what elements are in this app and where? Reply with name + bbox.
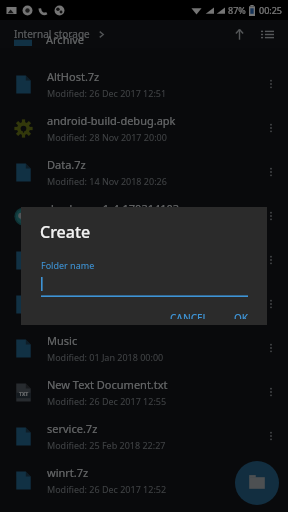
staticText: Download (47, 289, 100, 304)
button[interactable]: More options (258, 291, 284, 317)
staticText: Data.7z (47, 157, 86, 172)
staticText: android-build-debug.apk (47, 113, 176, 128)
staticText: Modified: 26 Dec 2017 12:51 (47, 87, 167, 99)
button[interactable]: daydream-1-4-170314103-apkplz.com.apk (0, 194, 288, 238)
staticText: Modified: 26 Dec 2017 12:52 (47, 483, 167, 495)
button[interactable]: More options (258, 247, 284, 273)
staticText: Modified: 01 Jan 2018 00:00 (47, 351, 164, 363)
button[interactable]: TXT (0, 370, 288, 414)
button[interactable]: service.7z (0, 414, 288, 458)
staticText: AltHost.7z (47, 69, 100, 84)
button[interactable]: More options (258, 203, 284, 229)
button[interactable]: OK (226, 305, 257, 325)
button[interactable]: Music (0, 326, 288, 370)
button[interactable]: Internal storage (14, 27, 106, 41)
button[interactable]: More options (258, 335, 284, 361)
staticText: Modified: 25 Feb 2018 22:27 (47, 439, 166, 451)
staticText: service.7z (47, 421, 98, 436)
staticText: Modified: 01 Jan 2018 00:00 (47, 263, 164, 275)
button[interactable]: winrt.7z (0, 458, 288, 502)
button[interactable]: More options (258, 115, 284, 141)
button[interactable]: android-build-debug.apk (0, 106, 288, 150)
staticText: daydream-1-4-170314103-apkplz.com.apk (47, 201, 258, 216)
button[interactable]: More options (258, 379, 284, 405)
staticText: Modified: 26 Dec 2017 12:55 (47, 395, 167, 407)
staticText: Modified: 14 Mar 2017 10:26 (47, 219, 168, 231)
button[interactable]: Download (0, 282, 288, 326)
button[interactable]: More options (258, 423, 284, 449)
staticText: 00:25 (259, 4, 283, 16)
staticText: Music (47, 333, 78, 348)
button[interactable]: CANCEL (162, 305, 216, 325)
staticText: Modified: 14 Nov 2018 20:26 (47, 175, 167, 187)
staticText: OK (234, 311, 249, 319)
button[interactable]: Navigate up (226, 21, 252, 47)
button[interactable]: More options (258, 467, 284, 493)
staticText: New Text Document.txt (47, 377, 168, 392)
button[interactable]: View options (254, 21, 280, 47)
staticText: Folder name (41, 259, 95, 271)
button[interactable]: Create new folder (235, 461, 279, 505)
staticText: 87% (228, 4, 246, 16)
staticText: TXT (19, 391, 29, 398)
button[interactable]: Documents (0, 238, 288, 282)
button[interactable]: More options (258, 71, 284, 97)
staticText: Archive (46, 32, 85, 46)
button[interactable]: More options (258, 159, 284, 185)
staticText: winrt.7z (47, 465, 89, 480)
button[interactable]: AltHost.7z (0, 62, 288, 106)
button[interactable]: Data.7z (0, 150, 288, 194)
staticText: Modified: 28 Nov 2017 20:00 (47, 131, 167, 143)
staticText: CANCEL (170, 311, 208, 319)
staticText: Create (40, 221, 91, 243)
staticText: Internal storage (14, 27, 90, 41)
